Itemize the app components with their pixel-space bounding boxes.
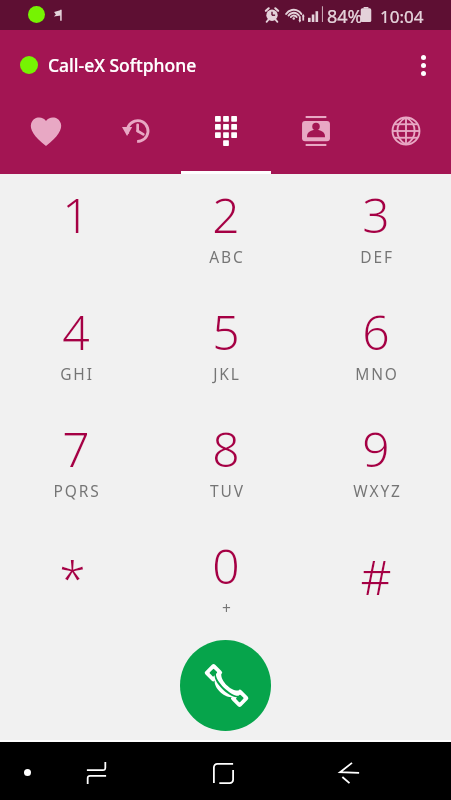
button[interactable]: Dialpad xyxy=(181,100,271,174)
staticText: 9 xyxy=(362,416,390,481)
button[interactable]: Contacts xyxy=(271,100,361,174)
staticText: # xyxy=(360,544,392,609)
staticText: 6 xyxy=(362,299,390,364)
button[interactable]: Favorites xyxy=(0,100,91,174)
staticText: 5 xyxy=(212,299,240,364)
button[interactable]: 9 xyxy=(301,408,451,525)
button[interactable]: Recent apps xyxy=(63,742,129,800)
staticText: Call-eX Softphone xyxy=(48,53,197,77)
button[interactable]: # xyxy=(301,525,451,642)
button[interactable]: 8 xyxy=(151,408,301,525)
staticText: TUV xyxy=(210,480,245,501)
staticText: + xyxy=(222,597,233,618)
button[interactable]: More options xyxy=(396,30,451,100)
button[interactable]: Recents xyxy=(91,100,181,174)
button[interactable]: 3 xyxy=(301,174,451,291)
staticText: 4 xyxy=(62,299,90,364)
button[interactable]: 0 xyxy=(151,525,301,642)
staticText: DEF xyxy=(360,246,394,267)
button[interactable]: 4 xyxy=(0,291,151,408)
button[interactable]: * xyxy=(0,525,151,642)
staticText: GHI xyxy=(60,363,94,384)
staticText: 7 xyxy=(62,416,90,481)
staticText: 0 xyxy=(212,533,240,598)
staticText: 8 xyxy=(212,416,240,481)
staticText: 84% xyxy=(327,4,363,29)
staticText: 10:04 xyxy=(380,5,424,28)
staticText: WXYZ xyxy=(353,480,402,501)
staticText: 3 xyxy=(362,182,390,247)
button[interactable]: 1 xyxy=(0,174,151,291)
button[interactable]: Home xyxy=(190,742,256,800)
button[interactable]: Global xyxy=(361,100,451,174)
button[interactable]: 2 xyxy=(151,174,301,291)
staticText: PQRS xyxy=(53,480,101,501)
staticText: MNO xyxy=(355,363,399,384)
staticText: JKL xyxy=(213,363,241,384)
staticText: * xyxy=(59,545,86,610)
staticText: ABC xyxy=(209,246,245,267)
button[interactable]: 6 xyxy=(301,291,451,408)
staticText: 1 xyxy=(62,182,90,247)
button[interactable]: Menu xyxy=(0,742,58,800)
button[interactable]: 5 xyxy=(151,291,301,408)
staticText: 2 xyxy=(212,182,240,247)
button[interactable]: Call xyxy=(180,640,271,731)
button[interactable]: 7 xyxy=(0,408,151,525)
button[interactable]: Back xyxy=(316,742,382,800)
